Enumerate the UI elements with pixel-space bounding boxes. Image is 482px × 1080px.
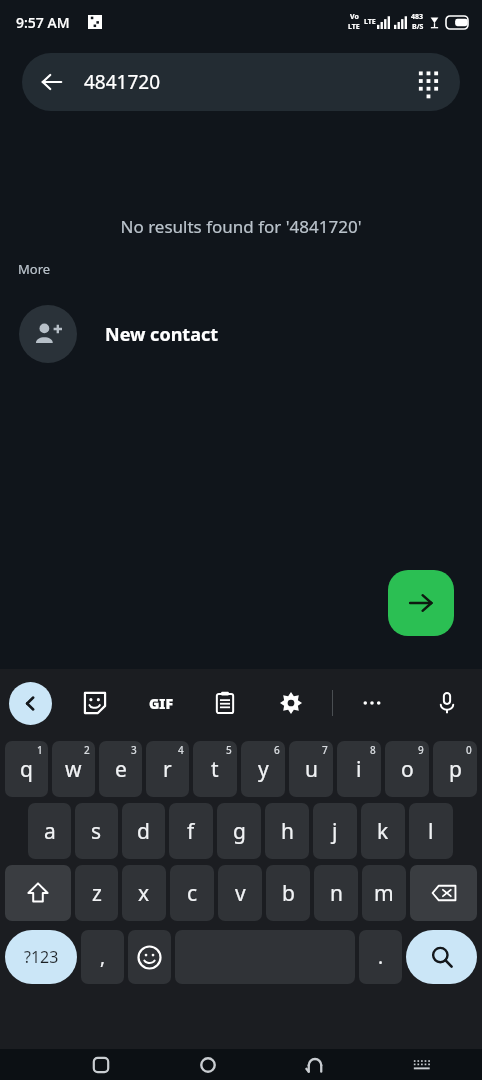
staticText: Vo xyxy=(350,12,359,22)
button[interactable]: r xyxy=(146,741,189,797)
staticText: r xyxy=(163,755,172,784)
button[interactable]: y xyxy=(241,741,285,797)
staticText: 1 xyxy=(37,743,43,757)
button[interactable]: Back xyxy=(30,60,74,104)
button[interactable]: n xyxy=(314,865,358,921)
staticText: LTE xyxy=(348,22,360,32)
button[interactable]: u xyxy=(289,741,333,797)
button[interactable]: Voice input xyxy=(428,684,466,722)
button[interactable]: s xyxy=(75,803,118,859)
staticText: 6 xyxy=(274,743,280,757)
staticText: New contact xyxy=(105,322,219,347)
button[interactable]: a xyxy=(28,803,71,859)
staticText: , xyxy=(100,944,106,970)
staticText: . xyxy=(378,944,384,970)
button[interactable]: k xyxy=(361,803,405,859)
button[interactable]: h xyxy=(265,803,309,859)
staticText: e xyxy=(115,755,127,784)
staticText: k xyxy=(377,817,389,846)
staticText: 4841720 xyxy=(84,69,406,95)
staticText: 2 xyxy=(84,743,90,757)
button[interactable]: Back xyxy=(294,1049,336,1080)
staticText: o xyxy=(401,755,414,784)
button[interactable]: Clipboard xyxy=(206,684,244,722)
staticText: w xyxy=(65,755,82,784)
button[interactable]: z xyxy=(75,865,118,921)
button[interactable]: o xyxy=(385,741,429,797)
button[interactable]: v xyxy=(218,865,262,921)
button[interactable]: t xyxy=(193,741,237,797)
button[interactable]: q xyxy=(5,741,48,797)
staticText: z xyxy=(92,879,102,908)
button[interactable]: Search xyxy=(406,930,477,984)
staticText: c xyxy=(187,879,198,908)
staticText: 9:57 AM xyxy=(16,13,70,32)
staticText: v xyxy=(235,879,246,908)
staticText: y xyxy=(258,755,269,784)
staticText: 4 xyxy=(178,743,184,757)
button[interactable]: More options xyxy=(353,684,391,722)
button[interactable]: Stickers xyxy=(76,684,114,722)
button[interactable]: ?123 xyxy=(5,930,77,984)
staticText: 0 xyxy=(466,743,472,757)
staticText: x xyxy=(138,879,150,908)
button[interactable]: Recents xyxy=(80,1049,122,1080)
staticText: 5 xyxy=(226,743,232,757)
button[interactable]: g xyxy=(217,803,261,859)
button[interactable]: Period xyxy=(359,930,402,984)
staticText: g xyxy=(233,817,246,846)
button[interactable]: i xyxy=(337,741,381,797)
staticText: p xyxy=(449,755,462,784)
button[interactable]: Comma xyxy=(81,930,124,984)
button[interactable]: Backspace xyxy=(410,865,477,921)
staticText: More xyxy=(18,260,51,278)
staticText: l xyxy=(428,817,434,846)
button[interactable]: f xyxy=(169,803,213,859)
button[interactable]: m xyxy=(362,865,406,921)
staticText: LTE xyxy=(364,17,376,27)
staticText: 9 xyxy=(418,743,424,757)
staticText: u xyxy=(305,755,318,784)
button[interactable]: l xyxy=(409,803,453,859)
staticText: 483 xyxy=(411,12,424,22)
button[interactable]: e xyxy=(99,741,142,797)
staticText: m xyxy=(374,879,394,908)
button[interactable]: Home xyxy=(187,1049,229,1080)
button[interactable]: p xyxy=(433,741,477,797)
staticText: a xyxy=(44,817,56,846)
staticText: B/S xyxy=(412,22,424,32)
button[interactable]: New contact xyxy=(0,302,482,366)
staticText: h xyxy=(281,817,294,846)
button[interactable]: Hide keyboard xyxy=(401,1049,443,1080)
staticText: ?123 xyxy=(24,946,59,968)
staticText: b xyxy=(282,879,295,908)
button[interactable]: j xyxy=(313,803,357,859)
button[interactable]: d xyxy=(122,803,165,859)
button[interactable]: b xyxy=(266,865,310,921)
staticText: s xyxy=(91,817,102,846)
button[interactable]: Shift xyxy=(5,865,71,921)
button[interactable]: x xyxy=(122,865,166,921)
staticText: 8 xyxy=(370,743,376,757)
button[interactable]: Emoji xyxy=(128,930,171,984)
staticText: 3 xyxy=(131,743,137,757)
button[interactable]: Back xyxy=(22,53,460,111)
button[interactable]: GIF xyxy=(142,684,180,722)
staticText: n xyxy=(330,879,343,908)
staticText: d xyxy=(137,817,150,846)
staticText: GIF xyxy=(149,694,174,713)
staticText: j xyxy=(332,817,338,846)
button[interactable]: c xyxy=(170,865,214,921)
staticText: q xyxy=(20,755,33,784)
staticText: 7 xyxy=(322,743,328,757)
button[interactable]: Settings xyxy=(272,684,310,722)
button[interactable]: Submit xyxy=(388,570,454,636)
button[interactable]: Close toolbar xyxy=(9,682,52,725)
staticText: t xyxy=(211,755,219,784)
button[interactable]: Dialpad xyxy=(406,60,450,104)
button[interactable]: w xyxy=(52,741,95,797)
staticText: i xyxy=(356,755,362,784)
staticText: f xyxy=(187,817,195,846)
staticText: No results found for '4841720' xyxy=(0,215,482,238)
